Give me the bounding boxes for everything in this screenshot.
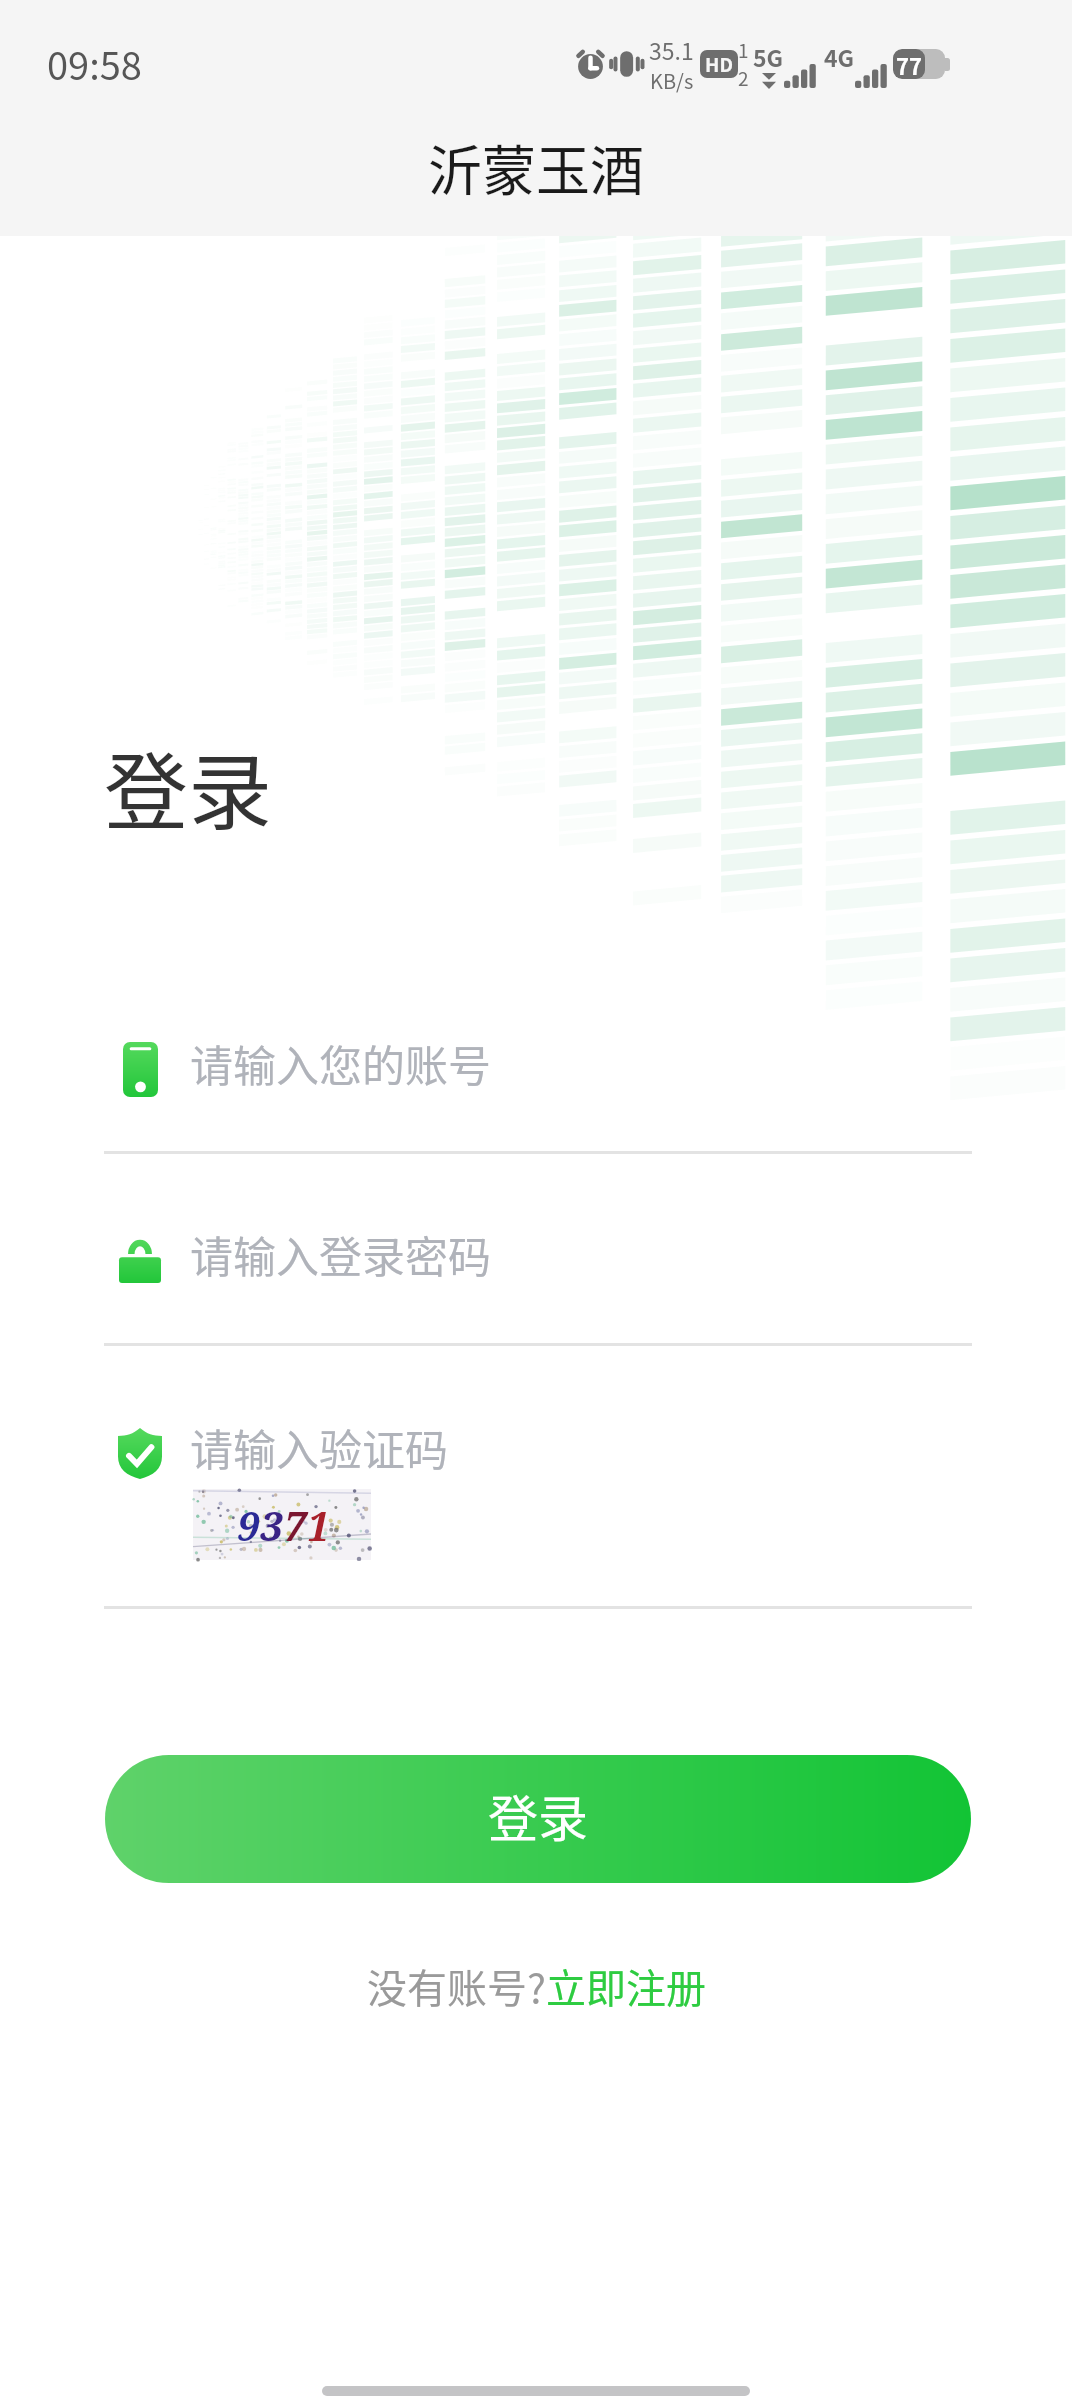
- staticText: 请输入登录密码: [190, 1223, 491, 1285]
- staticText: 没有账号?: [367, 1957, 546, 2015]
- staticText: 请输入您的账号: [190, 1032, 491, 1094]
- button[interactable]: 登录: [105, 1755, 971, 1883]
- staticText: 登录: [104, 726, 273, 848]
- button[interactable]: Refresh captcha image: [193, 1489, 371, 1560]
- staticText: 登录: [488, 1779, 588, 1851]
- staticText: KB/s: [650, 66, 694, 95]
- staticText: HD: [705, 50, 733, 78]
- staticText: 77: [896, 49, 922, 79]
- staticText: 35.1: [649, 33, 694, 66]
- staticText: 5G: [753, 40, 784, 73]
- staticText: 请输入验证码: [190, 1416, 448, 1478]
- staticText: 2: [738, 64, 749, 92]
- staticText: 09:58: [47, 36, 142, 91]
- button[interactable]: 请输入您的账号: [0, 1033, 1072, 1105]
- button[interactable]: 请输入验证码: [0, 1417, 1072, 1489]
- staticText: 1: [738, 36, 749, 64]
- staticText: 沂蒙玉酒: [428, 128, 644, 206]
- staticText: 4G: [824, 40, 855, 73]
- staticText: 9371: [237, 1498, 331, 1552]
- button[interactable]: 请输入登录密码: [0, 1224, 1072, 1296]
- button[interactable]: 没有账号?: [367, 1957, 706, 2015]
- staticText: 立即注册: [546, 1957, 706, 2015]
